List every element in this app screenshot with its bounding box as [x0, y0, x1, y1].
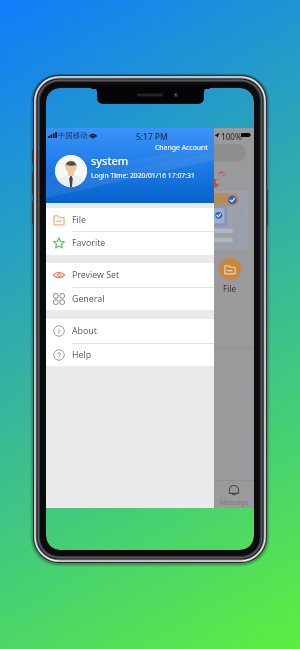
staticText: Change Account: [155, 143, 208, 152]
staticText: 5:17 PM: [136, 131, 168, 142]
staticText: 中国移动: [58, 131, 88, 140]
staticText: Preview Set: [72, 269, 120, 281]
button[interactable]: File: [46, 208, 214, 232]
button[interactable]: Help: [46, 343, 214, 367]
button[interactable]: Change Account: [155, 143, 208, 152]
button[interactable]: General: [46, 287, 214, 311]
staticText: Help: [72, 349, 92, 361]
staticText: About: [72, 325, 97, 337]
staticText: 100%: [221, 131, 243, 142]
staticText: Login Time: 2020/01/16 17:07:31: [91, 171, 195, 180]
staticText: File: [223, 283, 237, 294]
button[interactable]: About: [46, 319, 214, 343]
staticText: General: [72, 293, 105, 305]
button[interactable]: Message: [214, 481, 254, 508]
button[interactable]: Preview Set: [46, 263, 214, 286]
staticText: Favorite: [72, 237, 106, 249]
staticText: File: [72, 214, 87, 226]
staticText: system: [91, 153, 129, 168]
button[interactable]: Favorite: [46, 231, 214, 255]
button[interactable]: File: [219, 258, 241, 280]
staticText: Message: [219, 498, 249, 508]
